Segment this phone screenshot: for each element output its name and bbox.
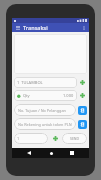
- button[interactable]: Add: [77, 77, 87, 88]
- button[interactable]: Recent apps: [67, 148, 77, 158]
- staticText: SEND: [70, 136, 80, 141]
- staticText: 1: [17, 136, 20, 141]
- button[interactable]: No Rekening untuk token PLN: [14, 118, 76, 130]
- button[interactable]: [14, 34, 87, 74]
- button[interactable]: SEND: [62, 133, 87, 144]
- button[interactable]: Home: [46, 148, 56, 158]
- staticText: 1 TULAMBOL: [17, 80, 43, 85]
- button[interactable]: More options: [80, 24, 87, 31]
- button[interactable]: Qty: [14, 90, 77, 101]
- staticText: No Rekening untuk token PLN: [18, 122, 72, 127]
- staticText: Qty: [23, 93, 30, 98]
- button[interactable]: Back: [24, 148, 34, 158]
- button[interactable]: 1: [14, 133, 48, 144]
- staticText: 1.000: [63, 93, 74, 98]
- button[interactable]: No. Tujuan / No Pelanggan: [14, 104, 76, 116]
- button[interactable]: Add item: [48, 133, 62, 144]
- button[interactable]: Add quantity: [77, 90, 87, 101]
- staticText: Transaksi: [23, 24, 48, 31]
- button[interactable]: Contacts: [78, 120, 87, 129]
- button[interactable]: 1 TULAMBOL: [14, 77, 77, 88]
- button[interactable]: Menu: [14, 24, 21, 31]
- button[interactable]: Contacts: [78, 106, 87, 115]
- staticText: No. Tujuan / No Pelanggan: [18, 108, 66, 113]
